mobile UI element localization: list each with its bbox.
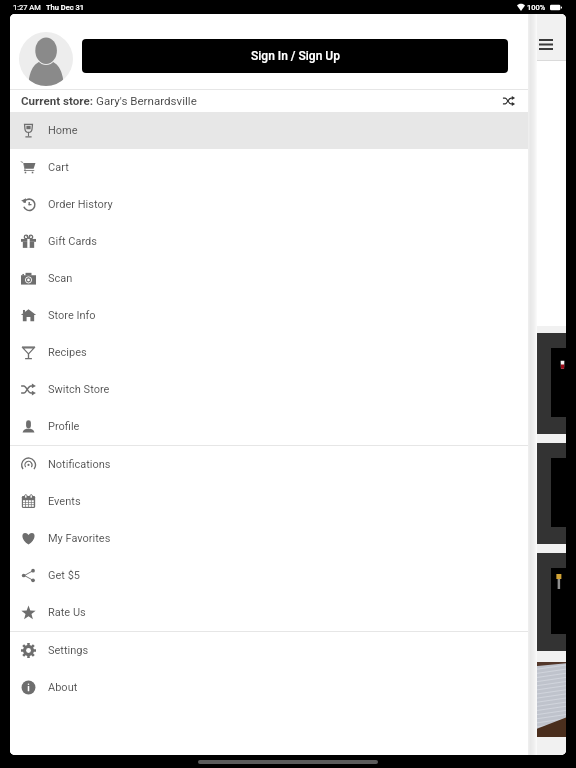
button[interactable]: Gift Cards bbox=[10, 223, 528, 260]
button[interactable]: Cart bbox=[10, 149, 528, 186]
button[interactable]: Profile bbox=[10, 408, 528, 445]
button[interactable]: Settings bbox=[10, 632, 528, 669]
staticText: Thu Dec 31 bbox=[46, 3, 84, 12]
other: Switch store bbox=[502, 94, 516, 108]
button[interactable]: Profile photo bbox=[19, 32, 73, 86]
button[interactable]: My Favorites bbox=[10, 520, 528, 557]
staticText: My Favorites bbox=[48, 532, 111, 545]
staticText: Order History bbox=[48, 198, 113, 211]
staticText: 1:27 AM bbox=[13, 3, 41, 12]
button[interactable]: Store Info bbox=[10, 297, 528, 334]
staticText: About bbox=[48, 681, 78, 694]
staticText: Recipes bbox=[48, 346, 87, 359]
button[interactable]: Rate Us bbox=[10, 594, 528, 631]
staticText: Profile bbox=[48, 420, 80, 433]
staticText: Switch Store bbox=[48, 383, 110, 396]
button[interactable] bbox=[537, 333, 566, 434]
staticText: Current store: bbox=[21, 94, 96, 108]
button[interactable]: Sign In / Sign Up bbox=[82, 39, 508, 73]
staticText: Store Info bbox=[48, 309, 96, 322]
button[interactable]: Recipes bbox=[10, 334, 528, 371]
staticText: Sign In / Sign Up bbox=[251, 49, 340, 63]
button[interactable]: Get $5 bbox=[10, 557, 528, 594]
button[interactable]: Current store: bbox=[10, 90, 528, 112]
button[interactable]: About bbox=[10, 669, 528, 706]
staticText: Events bbox=[48, 495, 81, 508]
staticText: Gift Cards bbox=[48, 235, 97, 248]
button[interactable] bbox=[537, 553, 566, 651]
staticText: Rate Us bbox=[48, 606, 86, 619]
staticText: Home bbox=[48, 124, 78, 137]
button[interactable]: Switch Store bbox=[10, 371, 528, 408]
staticText: 100% bbox=[527, 3, 546, 12]
staticText: Settings bbox=[48, 644, 89, 657]
button[interactable]: Home bbox=[10, 112, 528, 149]
button[interactable]: Order History bbox=[10, 186, 528, 223]
button[interactable]: Photo bbox=[535, 662, 566, 737]
staticText: Gary's Bernardsville bbox=[96, 94, 197, 108]
staticText: Notifications bbox=[48, 458, 111, 471]
staticText: Get $5 bbox=[48, 569, 81, 582]
staticText: Scan bbox=[48, 272, 73, 285]
button[interactable]: Open navigation menu bbox=[528, 26, 564, 62]
button[interactable]: Events bbox=[10, 483, 528, 520]
staticText: Cart bbox=[48, 161, 69, 174]
button[interactable]: Notifications bbox=[10, 446, 528, 483]
button[interactable]: Scan bbox=[10, 260, 528, 297]
button[interactable] bbox=[537, 443, 566, 544]
